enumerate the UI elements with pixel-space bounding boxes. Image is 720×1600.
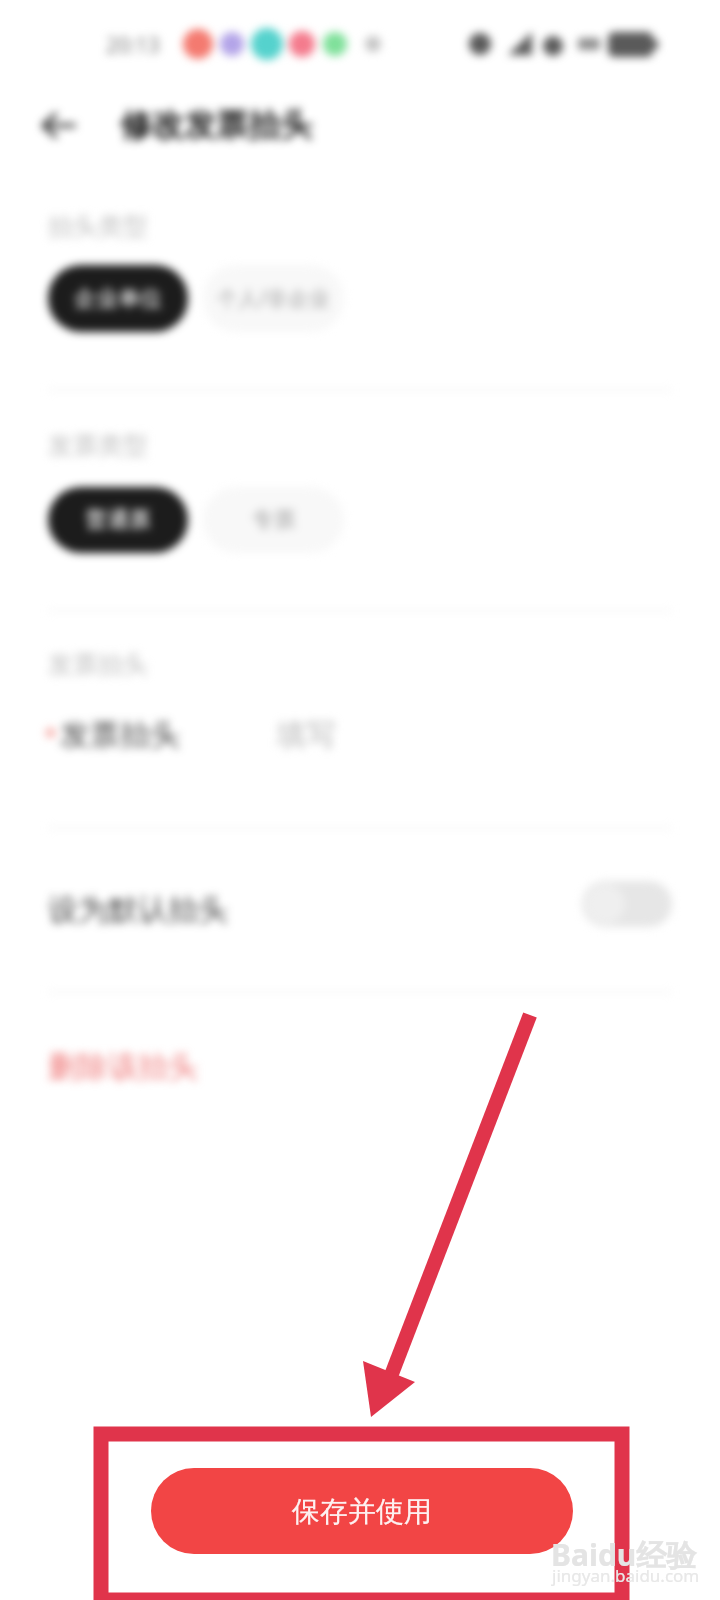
button[interactable]: 返回 [28, 95, 88, 155]
staticText: 企业单位 [74, 285, 162, 313]
staticText: 普通票 [85, 506, 151, 534]
staticText: * [44, 719, 58, 752]
staticText: 20:13 [106, 31, 160, 60]
staticText: 发票抬头 [48, 649, 148, 680]
button[interactable]: 个人/非企业 [203, 265, 344, 332]
staticText: 删除该抬头 [48, 1048, 198, 1086]
button[interactable]: 专票 [203, 487, 344, 553]
staticText: 发票类型 [48, 430, 148, 461]
button[interactable]: 保存并使用 [151, 1468, 573, 1554]
staticText: 保存并使用 [292, 1494, 432, 1529]
button[interactable]: * [0, 707, 720, 763]
staticText: Baidu经验 [551, 1534, 697, 1575]
button[interactable]: 设为默认抬头开关 [582, 881, 672, 927]
staticText: 抬头类型 [48, 211, 148, 242]
staticText: 个人/非企业 [217, 284, 330, 313]
button[interactable]: 删除该抬头 [44, 1046, 202, 1088]
button[interactable]: 普通票 [48, 487, 188, 553]
staticText: 设为默认抬头 [48, 891, 228, 929]
staticText: 专票 [252, 506, 296, 534]
button[interactable]: 企业单位 [48, 265, 188, 332]
staticText: 发票抬头 [60, 716, 180, 754]
staticText: 修改发票抬头 [120, 105, 312, 145]
staticText: jingyan.baidu.com [552, 1564, 700, 1587]
staticText: 填写 [276, 716, 336, 754]
